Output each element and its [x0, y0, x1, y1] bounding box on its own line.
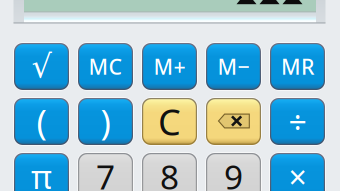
button[interactable]: M−: [206, 43, 260, 89]
staticText: ×: [288, 155, 306, 191]
staticText: √: [31, 48, 51, 85]
button[interactable]: √: [14, 43, 68, 89]
button[interactable]: 7: [78, 153, 132, 191]
button[interactable]: M+: [142, 43, 196, 89]
button[interactable]: ×: [270, 153, 324, 191]
button[interactable]: 8: [142, 153, 196, 191]
button[interactable]: MC: [78, 43, 132, 89]
button[interactable]: ): [78, 98, 132, 144]
staticText: 9: [224, 154, 243, 191]
button[interactable]: π: [14, 153, 68, 191]
button[interactable]: [206, 98, 260, 144]
button[interactable]: C: [142, 98, 196, 144]
staticText: 7: [96, 154, 115, 191]
staticText: ): [100, 98, 110, 144]
staticText: MR: [281, 52, 314, 81]
button[interactable]: 9: [206, 153, 260, 191]
staticText: M−: [217, 52, 249, 81]
staticText: C: [158, 98, 181, 145]
staticText: ÷: [288, 100, 306, 143]
staticText: 8: [160, 154, 179, 191]
staticText: MC: [88, 52, 122, 81]
staticText: M+: [153, 52, 185, 81]
button[interactable]: (: [14, 98, 68, 144]
button[interactable]: ÷: [270, 98, 324, 144]
button[interactable]: MR: [270, 43, 324, 89]
staticText: π: [31, 155, 52, 191]
staticText: (: [36, 98, 46, 144]
